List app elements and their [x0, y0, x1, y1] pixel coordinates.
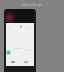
staticText: Material Design	[22, 3, 42, 7]
